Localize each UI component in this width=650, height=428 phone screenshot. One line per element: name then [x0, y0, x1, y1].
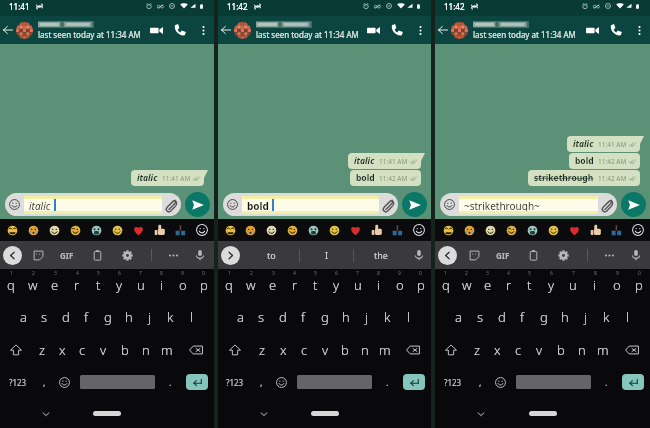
- button[interactable]: last seen today at 11:34 AM: [256, 20, 361, 40]
- button[interactable]: w: [22, 276, 44, 294]
- button[interactable]: r: [66, 276, 88, 294]
- button[interactable]: italic: [348, 153, 421, 169]
- button[interactable]: .: [160, 366, 180, 398]
- button[interactable]: Shift: [435, 333, 467, 366]
- button[interactable]: Send: [621, 192, 646, 217]
- button[interactable]: m: [375, 333, 395, 366]
- button[interactable]: u: [562, 276, 584, 294]
- button[interactable]: ?123: [218, 366, 252, 398]
- button[interactable]: Heart emoji: [345, 219, 366, 241]
- button[interactable]: More emoji: [191, 219, 212, 241]
- button[interactable]: o: [172, 276, 193, 294]
- button[interactable]: v: [315, 333, 335, 366]
- button[interactable]: t: [305, 276, 326, 294]
- button[interactable]: e: [477, 276, 498, 294]
- button[interactable]: Shift: [218, 333, 252, 366]
- button[interactable]: Stickers: [460, 241, 488, 269]
- button[interactable]: .: [377, 366, 397, 398]
- button[interactable]: italic: [567, 136, 640, 152]
- button[interactable]: Hide keyboard: [40, 408, 52, 420]
- button[interactable]: I: [300, 241, 353, 269]
- button[interactable]: the: [354, 241, 407, 269]
- button[interactable]: x: [487, 333, 508, 366]
- button[interactable]: last seen today at 11:34 AM: [38, 20, 144, 40]
- button[interactable]: j: [575, 300, 596, 333]
- button[interactable]: Emoji: [437, 219, 459, 241]
- button[interactable]: bold: [569, 153, 640, 169]
- button[interactable]: n: [135, 333, 156, 366]
- button[interactable]: w: [240, 276, 262, 294]
- button[interactable]: Emoji: [543, 219, 564, 241]
- button[interactable]: Clipboard: [82, 241, 112, 269]
- button[interactable]: z: [252, 333, 273, 366]
- button[interactable]: Thumbs up emoji: [149, 219, 170, 241]
- button[interactable]: ,: [471, 366, 489, 398]
- button[interactable]: Emoji: [220, 219, 240, 241]
- button[interactable]: f: [76, 300, 97, 333]
- button[interactable]: Voice call: [604, 18, 628, 42]
- button[interactable]: j: [139, 300, 160, 333]
- button[interactable]: x: [273, 333, 294, 366]
- button[interactable]: ?123: [0, 366, 35, 398]
- button[interactable]: k: [160, 300, 181, 333]
- button[interactable]: u: [130, 276, 151, 294]
- button[interactable]: Back: [218, 16, 234, 44]
- button[interactable]: Emoji: [44, 219, 65, 241]
- button[interactable]: ~strikethrough~: [440, 193, 617, 216]
- button[interactable]: s: [34, 300, 55, 333]
- button[interactable]: a: [447, 300, 469, 333]
- button[interactable]: t: [88, 276, 109, 294]
- button[interactable]: italic: [5, 193, 181, 216]
- button[interactable]: i: [151, 276, 172, 294]
- button[interactable]: Video call: [144, 18, 168, 42]
- button[interactable]: Emoji: [261, 219, 282, 241]
- button[interactable]: h: [335, 300, 356, 333]
- button[interactable]: Video call: [361, 18, 385, 42]
- button[interactable]: ,: [252, 366, 270, 398]
- button[interactable]: Emoji: [2, 219, 23, 241]
- button[interactable]: More options: [409, 19, 431, 41]
- button[interactable]: w: [456, 276, 477, 294]
- button[interactable]: Hide keyboard: [258, 408, 270, 420]
- button[interactable]: x: [52, 333, 72, 366]
- button[interactable]: k: [596, 300, 617, 333]
- button[interactable]: c: [72, 333, 93, 366]
- button[interactable]: Emoji: [522, 219, 543, 241]
- button[interactable]: e: [262, 276, 284, 294]
- button[interactable]: Emoji: [459, 219, 480, 241]
- button[interactable]: Clipboard: [518, 241, 548, 269]
- button[interactable]: Home: [93, 411, 121, 416]
- button[interactable]: d: [55, 300, 76, 333]
- button[interactable]: g: [97, 300, 118, 333]
- button[interactable]: i: [584, 276, 606, 294]
- button[interactable]: Emoji: [65, 219, 86, 241]
- button[interactable]: Profile photo: [16, 22, 33, 39]
- button[interactable]: More options: [161, 241, 185, 269]
- button[interactable]: Attach: [381, 197, 396, 212]
- button[interactable]: Hide keyboard: [475, 408, 487, 420]
- button[interactable]: u: [347, 276, 368, 294]
- button[interactable]: Voice call: [168, 18, 192, 42]
- button[interactable]: Voice call: [385, 18, 409, 42]
- button[interactable]: q: [435, 276, 456, 294]
- button[interactable]: More emoji: [408, 219, 429, 241]
- button[interactable]: Emoji: [270, 366, 292, 398]
- button[interactable]: Enter: [403, 374, 425, 390]
- button[interactable]: Attach: [600, 197, 615, 212]
- button[interactable]: Backspace: [613, 333, 650, 366]
- button[interactable]: p: [193, 276, 214, 294]
- button[interactable]: Backspace: [177, 333, 214, 366]
- button[interactable]: c: [508, 333, 529, 366]
- button[interactable]: v: [93, 333, 114, 366]
- button[interactable]: i: [368, 276, 389, 294]
- button[interactable]: n: [355, 333, 375, 366]
- button[interactable]: strikethrough: [528, 170, 640, 186]
- button[interactable]: Back: [435, 16, 451, 44]
- button[interactable]: Video call: [580, 18, 604, 42]
- button[interactable]: q: [0, 276, 22, 294]
- button[interactable]: m: [156, 333, 177, 366]
- button[interactable]: Voice input: [407, 241, 431, 269]
- button[interactable]: y: [540, 276, 562, 294]
- button[interactable]: s: [251, 300, 272, 333]
